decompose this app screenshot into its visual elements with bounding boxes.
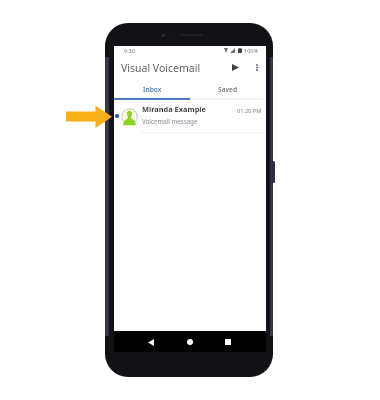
staticText: 100%: [244, 47, 259, 54]
staticText: Visual Voicemail: [121, 61, 201, 75]
button[interactable]: Recent apps: [219, 333, 237, 351]
button[interactable]: Play all voicemails: [226, 58, 244, 76]
button[interactable]: [114, 100, 266, 131]
staticText: Saved: [218, 85, 238, 94]
button[interactable]: Home: [181, 333, 199, 351]
button[interactable]: Back: [142, 333, 160, 351]
button[interactable]: Inbox: [114, 82, 190, 97]
button[interactable]: Saved: [190, 82, 266, 97]
staticText: 01:20 PM: [237, 107, 262, 115]
staticText: Inbox: [143, 85, 162, 94]
button[interactable]: More options: [248, 59, 265, 76]
staticText: 9:30: [124, 47, 135, 54]
staticText: Voicemail message: [142, 117, 198, 125]
staticText: Miranda Example: [142, 104, 206, 114]
